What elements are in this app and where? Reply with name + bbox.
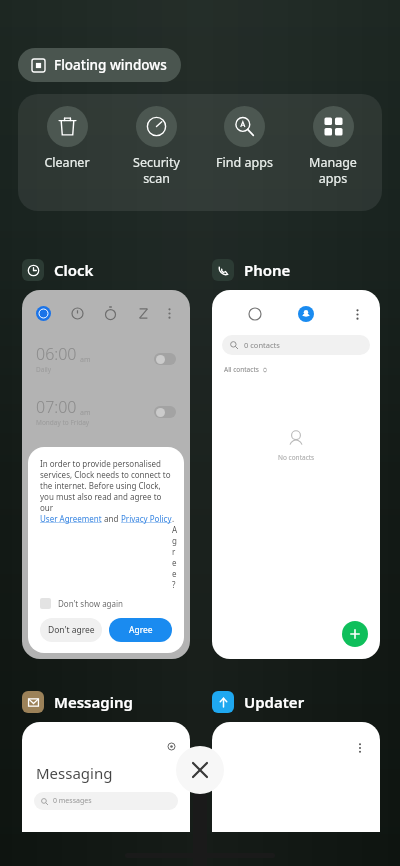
button[interactable]: 06:00 [22, 290, 190, 659]
staticText: 06:00 [36, 343, 77, 365]
staticText: 08:00 [36, 449, 77, 471]
button[interactable]: Messaging [22, 722, 190, 832]
staticText: Security scan [133, 154, 180, 186]
staticText: Agree [129, 624, 153, 636]
button[interactable]: Don't agree [40, 618, 102, 642]
staticText: Messaging [36, 763, 113, 783]
staticText: am [80, 408, 91, 418]
staticText: Don't agree [48, 624, 95, 636]
staticText: 0 contacts [244, 340, 280, 350]
staticText: In order to provide personalised service… [40, 458, 172, 513]
staticText: Manage apps [309, 154, 357, 186]
staticText: Not set [36, 471, 59, 480]
staticText: Messaging [54, 692, 133, 712]
staticText: Floating windows [54, 56, 167, 74]
staticText: Phone [244, 260, 291, 280]
button[interactable]: 0 contacts [212, 290, 380, 659]
button[interactable]: 0 messages [34, 792, 178, 810]
button[interactable]: Agree [109, 618, 172, 642]
staticText: Daily [36, 365, 52, 374]
staticText: am [80, 461, 91, 471]
staticText: Find apps [216, 154, 273, 171]
staticText: am [80, 355, 91, 365]
staticText: Clock [54, 260, 94, 280]
button[interactable]: Updater [212, 691, 305, 713]
staticText: User Agreement [40, 513, 102, 524]
button[interactable]: Phone [212, 259, 291, 281]
staticText: 07:00 [36, 396, 77, 418]
staticText: 0 messages [53, 796, 92, 806]
button[interactable]: Close [176, 746, 224, 794]
button[interactable]: 0 contacts [222, 335, 370, 355]
button[interactable]: Find apps [204, 106, 284, 171]
button[interactable]: Messaging [22, 691, 133, 713]
button[interactable] [212, 722, 380, 832]
staticText: Privacy Policy [121, 513, 172, 524]
button[interactable]: Floating windows [18, 48, 181, 82]
button[interactable]: Manage apps [293, 106, 373, 186]
staticText: Cleaner [44, 154, 90, 171]
staticText: No contacts [278, 453, 315, 462]
staticText: Don't show again [58, 598, 124, 609]
button[interactable]: Add contact [342, 621, 368, 647]
button[interactable]: Don't show again [40, 598, 124, 609]
button[interactable]: Cleaner [27, 106, 107, 171]
staticText: Updater [244, 692, 305, 712]
staticText: and [102, 513, 121, 524]
staticText: Monday to Friday [36, 418, 90, 427]
button[interactable]: Security scan [116, 106, 196, 186]
button[interactable]: Clock [22, 259, 94, 281]
staticText: All contacts [224, 365, 259, 374]
